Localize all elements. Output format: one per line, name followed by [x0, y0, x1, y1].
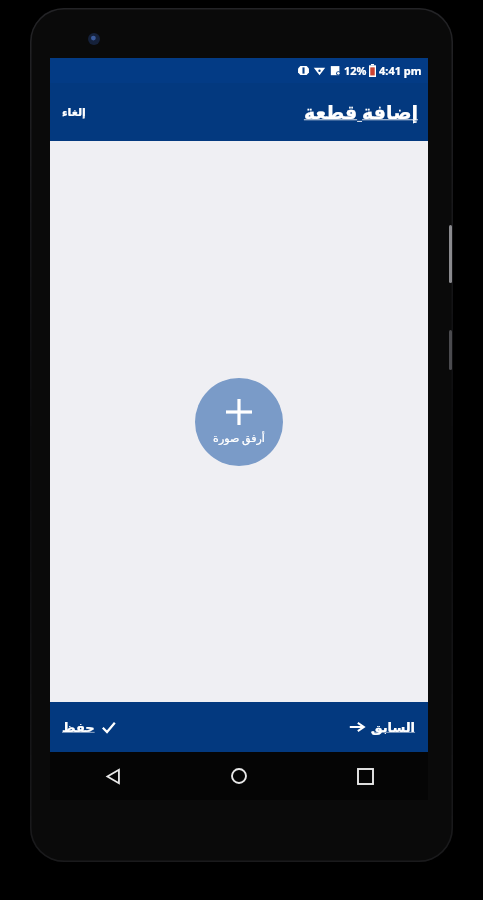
staticText: 4:41 pm — [379, 63, 422, 78]
staticText: أرفق صورة — [213, 430, 265, 445]
button[interactable]: حفظ — [50, 712, 128, 743]
button[interactable]: إضافة قطعة — [293, 93, 428, 131]
staticText: 12% — [344, 63, 367, 78]
button[interactable]: Back — [50, 752, 176, 800]
staticText: إلغاء — [62, 106, 86, 119]
button[interactable]: أرفق صورة — [195, 378, 283, 466]
staticText: إضافة قطعة — [303, 99, 418, 125]
button[interactable]: Recent apps — [302, 752, 428, 800]
button[interactable]: إلغاء — [50, 98, 98, 127]
staticText: السابق — [371, 720, 416, 735]
button[interactable]: Home — [176, 752, 302, 800]
staticText: حفظ — [62, 720, 95, 735]
button[interactable]: السابق — [337, 711, 428, 743]
